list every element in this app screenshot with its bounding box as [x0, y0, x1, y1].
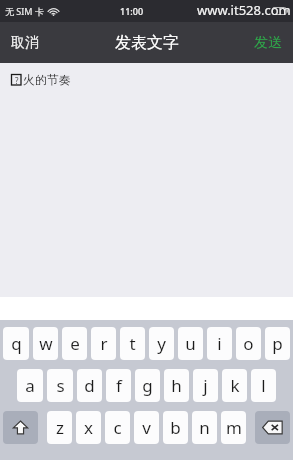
button[interactable]: c [105, 411, 130, 444]
button[interactable]: x [76, 411, 101, 444]
staticText: e [70, 332, 80, 355]
button[interactable]: h [164, 369, 189, 402]
button[interactable]: i [207, 327, 232, 360]
staticText: 取消 [11, 34, 39, 52]
staticText: m [226, 416, 242, 439]
staticText: www.it528.com [197, 1, 291, 19]
staticText: i [217, 332, 222, 355]
button[interactable]: Backspace [255, 411, 290, 444]
staticText: n [199, 416, 210, 439]
button[interactable]: j [193, 369, 218, 402]
staticText: a [25, 374, 35, 397]
staticText: t [129, 332, 136, 355]
button[interactable]: s [47, 369, 73, 402]
staticText: b [170, 416, 181, 439]
staticText: g [142, 374, 153, 397]
button[interactable]: q [3, 327, 29, 360]
button[interactable]: y [149, 327, 174, 360]
button[interactable]: a [17, 369, 43, 402]
staticText: 发送 [254, 34, 282, 52]
staticText: 11:00 [120, 5, 144, 17]
staticText: y [157, 332, 166, 355]
staticText: x [84, 416, 93, 439]
button[interactable]: l [251, 369, 276, 402]
button[interactable]: m [221, 411, 246, 444]
staticText: l [261, 374, 266, 397]
staticText: u [185, 332, 196, 355]
staticText: w [39, 332, 53, 355]
button[interactable]: Shift [3, 411, 38, 444]
button[interactable]: u [178, 327, 203, 360]
button[interactable]: w [33, 327, 58, 360]
button[interactable]: f [106, 369, 131, 402]
button[interactable]: d [77, 369, 102, 402]
staticText: ? [15, 75, 19, 86]
staticText: q [11, 332, 22, 355]
button[interactable]: n [192, 411, 217, 444]
button[interactable]: 发送 [243, 25, 293, 61]
button[interactable]: p [265, 327, 290, 360]
button[interactable]: 取消 [0, 25, 50, 61]
button[interactable]: g [135, 369, 160, 402]
staticText: s [56, 374, 65, 397]
button[interactable]: r [91, 327, 116, 360]
button[interactable]: k [222, 369, 247, 402]
staticText: z [56, 416, 64, 439]
button[interactable]: o [236, 327, 261, 360]
staticText: k [230, 374, 240, 397]
button[interactable]: v [134, 411, 159, 444]
button[interactable]: e [62, 327, 87, 360]
button[interactable]: t [120, 327, 145, 360]
staticText: 无 SIM 卡 [5, 5, 44, 17]
button[interactable]: z [47, 411, 72, 444]
staticText: h [171, 374, 182, 397]
staticText: 发表文字 [115, 33, 179, 53]
staticText: f [116, 374, 122, 397]
staticText: o [243, 332, 254, 355]
staticText: p [272, 332, 283, 355]
staticText: c [113, 416, 122, 439]
button[interactable]: b [163, 411, 188, 444]
staticText: r [100, 332, 108, 355]
staticText: d [84, 374, 95, 397]
staticText: v [142, 416, 151, 439]
staticText: j [203, 374, 208, 397]
staticText: 火的节奏 [23, 72, 71, 87]
